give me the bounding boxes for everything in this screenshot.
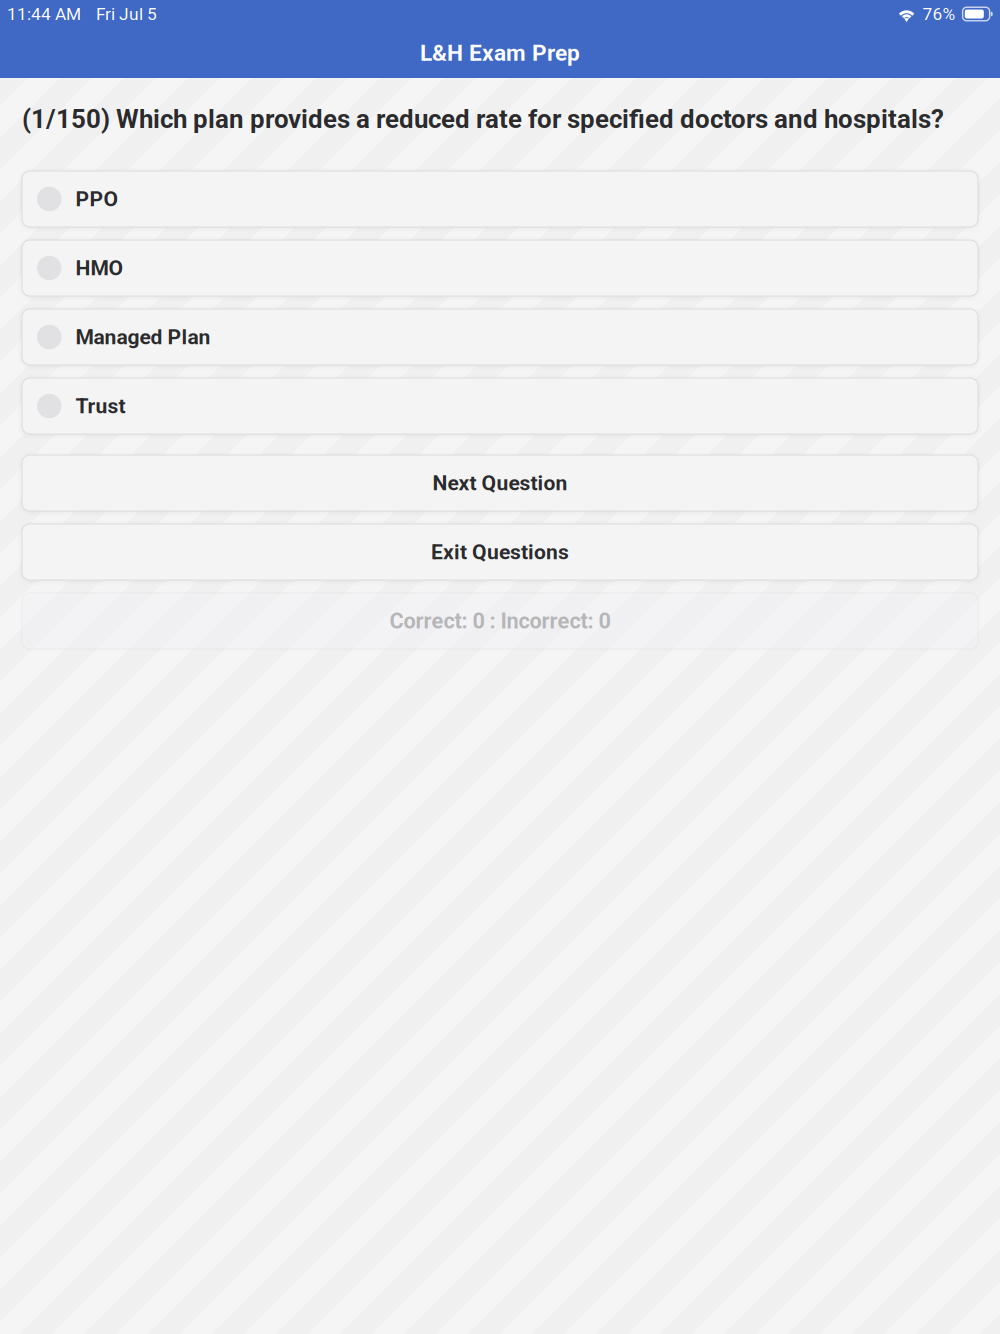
button[interactable]: Exit Questions (22, 524, 978, 580)
staticText: 11:44 AM (7, 4, 81, 24)
staticText: (1/150) Which plan provides a reduced ra… (22, 104, 944, 134)
staticText: Correct: 0 : Incorrect: 0 (389, 608, 610, 634)
staticText: Exit Questions (431, 540, 569, 564)
button[interactable]: Trust (22, 378, 978, 434)
staticText: 76% (923, 4, 956, 24)
staticText: HMO (75, 256, 123, 280)
button[interactable]: Managed Plan (22, 309, 978, 365)
staticText: PPO (75, 187, 118, 211)
button[interactable]: Next Question (22, 455, 978, 511)
staticText: L&H Exam Prep (420, 40, 580, 66)
staticText: Fri Jul 5 (96, 4, 157, 24)
button[interactable]: L&H Exam Prep (0, 28, 1000, 78)
button[interactable]: Correct: 0 : Incorrect: 0 (22, 593, 978, 649)
button[interactable]: HMO (22, 240, 978, 296)
button[interactable]: PPO (22, 171, 978, 227)
staticText: Managed Plan (75, 325, 210, 349)
staticText: Trust (75, 394, 125, 418)
staticText: Next Question (432, 471, 567, 495)
